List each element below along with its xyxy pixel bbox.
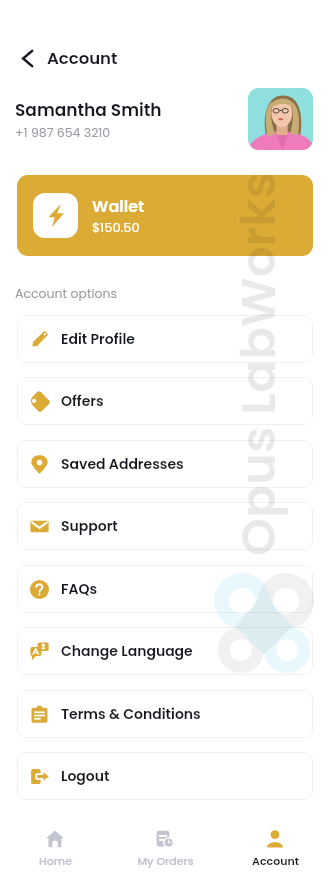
staticText: Terms & Conditions — [61, 704, 201, 724]
staticText: Saved Addresses — [61, 454, 184, 474]
button[interactable]: Wallet — [17, 175, 313, 256]
staticText: Change Language — [61, 641, 193, 661]
button[interactable]: Back — [12, 43, 42, 73]
staticText: Home — [39, 853, 72, 868]
button[interactable]: Account — [220, 818, 330, 879]
staticText: Account — [47, 47, 118, 70]
staticText: Opus LabWorks — [224, 172, 292, 556]
staticText: $150.50 — [92, 218, 140, 236]
button[interactable]: Edit Profile — [17, 315, 313, 363]
staticText: +1 987 654 3210 — [15, 124, 111, 141]
staticText: Edit Profile — [61, 329, 135, 349]
button[interactable]: FAQs — [17, 565, 313, 613]
button[interactable]: Home — [0, 818, 110, 879]
staticText: FAQs — [61, 579, 98, 599]
staticText: My Orders — [137, 853, 194, 868]
staticText: Account options — [15, 285, 118, 302]
button[interactable]: Terms & Conditions — [17, 690, 313, 738]
button[interactable]: Change Language — [17, 627, 313, 675]
staticText: Logout — [61, 766, 110, 786]
button[interactable]: Support — [17, 502, 313, 550]
button[interactable]: Saved Addresses — [17, 440, 313, 488]
staticText: Samantha Smith — [15, 98, 162, 122]
staticText: Offers — [61, 391, 104, 411]
staticText: Wallet — [92, 195, 145, 217]
button[interactable]: My Orders — [110, 818, 220, 879]
staticText: Account — [252, 853, 299, 868]
button[interactable]: Profile photo — [248, 88, 313, 150]
staticText: Support — [61, 516, 118, 536]
button[interactable]: Logout — [17, 752, 313, 800]
button[interactable]: Offers — [17, 377, 313, 425]
